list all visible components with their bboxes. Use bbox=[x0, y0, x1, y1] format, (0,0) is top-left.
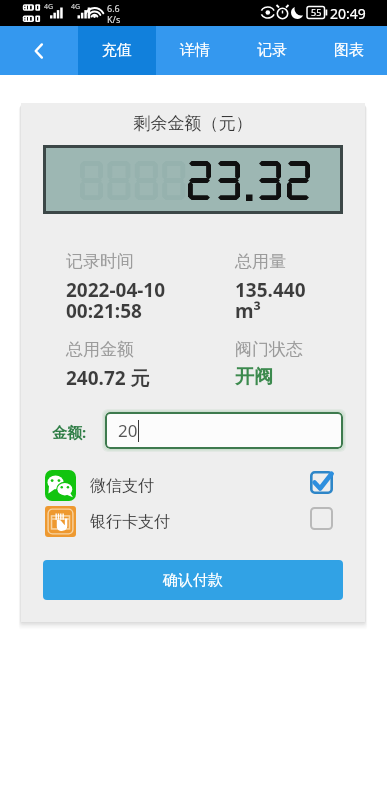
button[interactable]: 记录 bbox=[233, 26, 310, 75]
button[interactable]: Back bbox=[0, 26, 78, 75]
staticText: 240.72 元 bbox=[66, 365, 150, 391]
button[interactable]: 确认付款 bbox=[43, 560, 343, 600]
button[interactable]: 微信支付 bbox=[45, 467, 353, 501]
staticText: 4G bbox=[44, 2, 54, 12]
staticText: 135.440 m³ bbox=[235, 277, 306, 324]
staticText: 55 bbox=[311, 6, 322, 18]
button[interactable]: 详情 bbox=[156, 26, 233, 75]
button[interactable]: 银行卡支付 bbox=[45, 503, 353, 537]
staticText: 剩余金额（元） bbox=[21, 113, 365, 134]
staticText: 4G bbox=[71, 2, 81, 12]
staticText: 20 bbox=[118, 419, 138, 442]
staticText: 开阀 bbox=[235, 365, 273, 389]
button[interactable]: 图表 bbox=[310, 26, 387, 75]
staticText: 6.6 K/s bbox=[107, 2, 121, 25]
staticText: 充值 bbox=[102, 41, 132, 60]
staticText: 记录时间 bbox=[66, 251, 134, 272]
staticText: 银行卡支付 bbox=[90, 512, 170, 532]
staticText: 微信支付 bbox=[90, 476, 154, 496]
button[interactable]: 充值 bbox=[78, 26, 156, 75]
staticText: 金额: bbox=[52, 422, 87, 442]
staticText: 20:49 bbox=[330, 4, 366, 23]
staticText: 总用金额 bbox=[66, 339, 134, 360]
staticText: 确认付款 bbox=[163, 571, 223, 590]
button[interactable]: 20 bbox=[105, 412, 343, 449]
staticText: 详情 bbox=[180, 41, 210, 60]
staticText: 图表 bbox=[334, 41, 364, 60]
staticText: 总用量 bbox=[235, 251, 286, 272]
staticText: 记录 bbox=[257, 41, 287, 60]
staticText: 2022-04-10 00:21:58 bbox=[66, 277, 166, 324]
staticText: 阀门状态 bbox=[235, 339, 303, 360]
